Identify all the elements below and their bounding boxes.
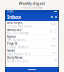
staticText: Marcus Lee xyxy=(7,28,22,31)
button[interactable]: Ana Reyes xyxy=(5,21,59,28)
button[interactable]: Daily News xyxy=(5,56,59,63)
button[interactable]: Figma xyxy=(5,35,59,42)
staticText: Sat xyxy=(54,58,57,61)
staticText: Gate change B12 xyxy=(7,52,31,56)
staticText: Weekly digest xyxy=(18,1,45,6)
staticText: Daily News xyxy=(7,56,22,59)
staticText: Figma xyxy=(7,35,16,38)
staticText: Inbox xyxy=(7,13,21,21)
button[interactable]: Compose xyxy=(53,16,57,18)
staticText: Re: Q3 roadmap xyxy=(7,31,29,35)
staticText: 9:41 xyxy=(7,10,14,13)
staticText: 8:12 xyxy=(50,30,57,33)
staticText: Today's briefing xyxy=(7,59,29,63)
button[interactable]: Marcus Lee xyxy=(5,28,59,35)
button[interactable]: Priya N. xyxy=(5,42,59,49)
staticText: Design sync notes xyxy=(7,24,32,28)
staticText: Mon xyxy=(51,44,57,47)
staticText: Sun xyxy=(52,51,57,54)
staticText: Travel xyxy=(7,49,15,52)
staticText: Ana Reyes xyxy=(7,21,22,24)
staticText: Weekly activity xyxy=(7,38,25,42)
staticText: Priya N. xyxy=(7,42,18,45)
staticText: Invoice attached xyxy=(7,45,29,49)
staticText: inbox overview xyxy=(22,6,42,9)
staticText: 9:41 xyxy=(50,23,57,26)
staticText: Tue xyxy=(52,37,57,40)
button[interactable]: Travel xyxy=(5,49,59,56)
